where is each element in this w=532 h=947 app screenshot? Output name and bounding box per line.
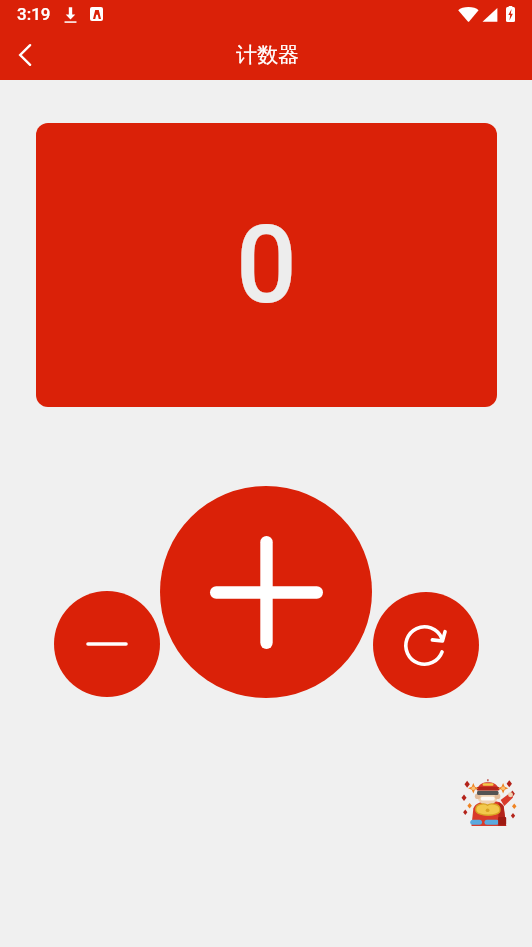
button[interactable]: Increase	[160, 486, 372, 698]
staticText: 0	[236, 203, 297, 328]
button[interactable]: Reset	[373, 592, 479, 698]
staticText: 计数器	[236, 42, 299, 68]
button[interactable]: Back	[4, 34, 46, 76]
button[interactable]: Decrease	[54, 591, 160, 697]
staticText: 3:19	[17, 4, 51, 24]
button[interactable]: Fortune god	[460, 777, 522, 827]
